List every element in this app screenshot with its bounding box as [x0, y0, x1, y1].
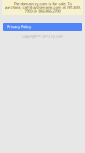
button[interactable]: Privacy Policy	[3, 23, 82, 31]
staticText: Copyright © 2013 zy.com	[22, 34, 63, 38]
staticText: Privacy Policy	[7, 25, 31, 29]
staticText: purchase, call BuyDomains.com at 781-839…	[4, 5, 80, 10]
staticText: The domain zy.com is for sale. To	[13, 1, 71, 6]
staticText: 7903 or 866-866-2700	[24, 8, 60, 14]
